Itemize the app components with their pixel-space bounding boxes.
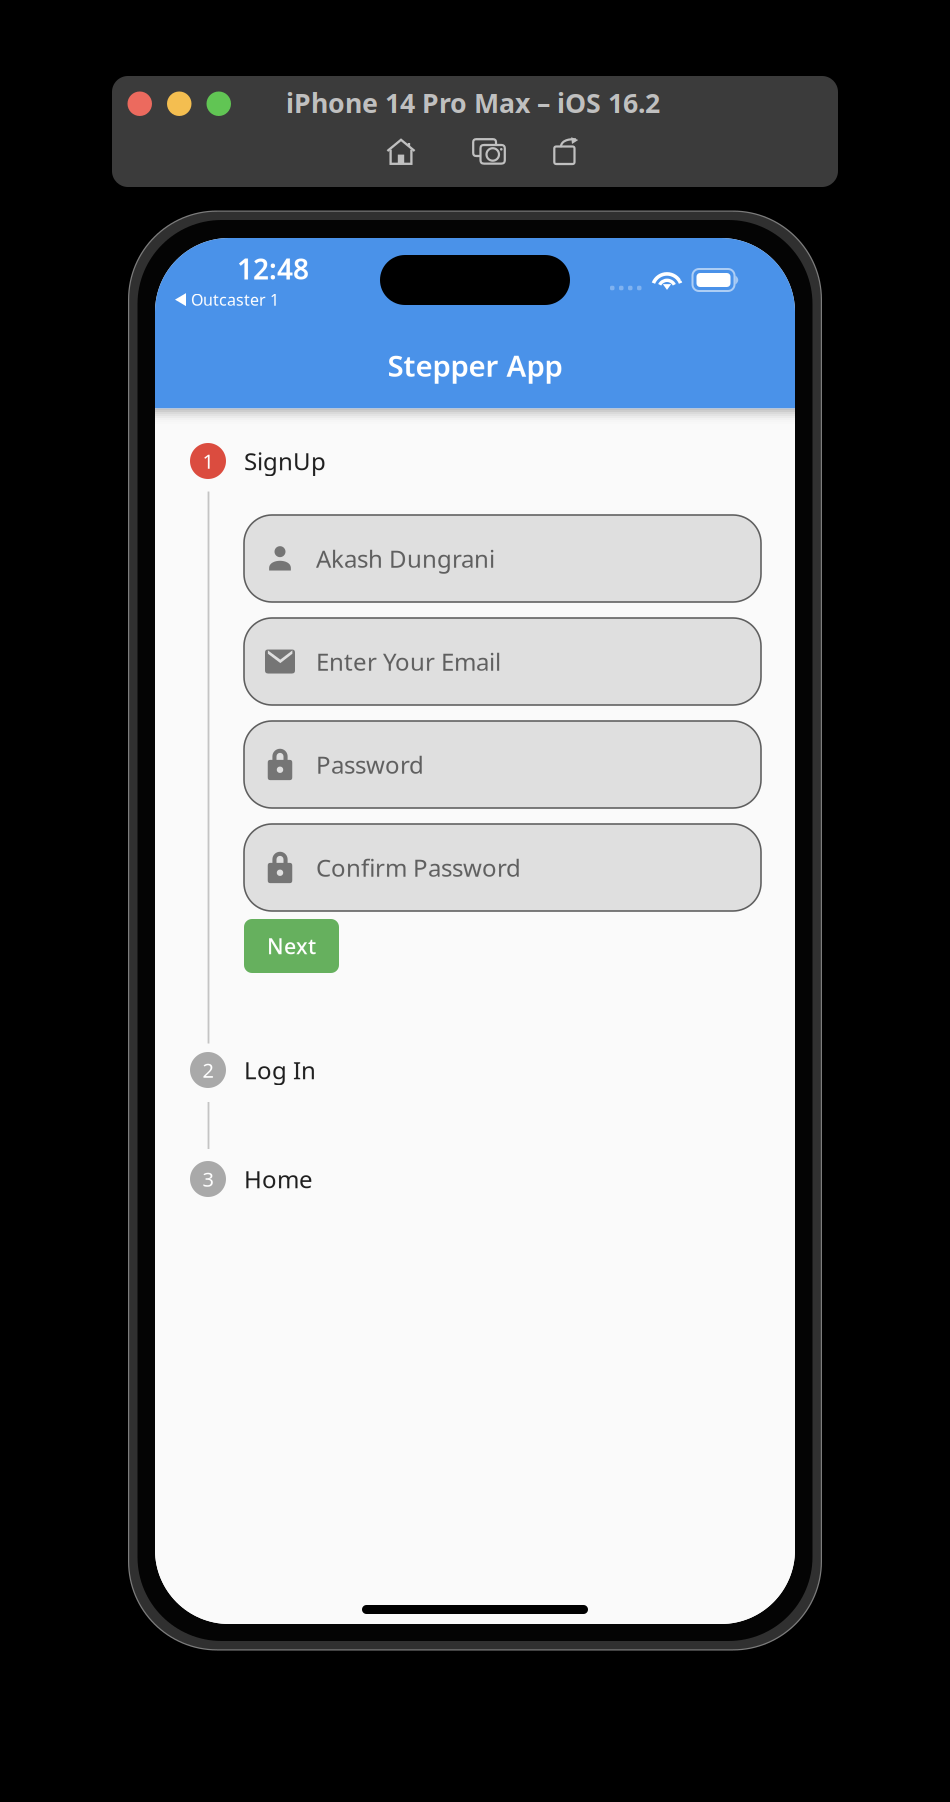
button[interactable]: Enter Your Email: [244, 618, 761, 705]
staticText: Akash Dungrani: [316, 543, 495, 574]
staticText: 3: [202, 1166, 213, 1192]
staticText: Outcaster 1: [191, 289, 279, 310]
button[interactable]: Minimize window: [167, 91, 191, 116]
button[interactable]: Next: [244, 919, 339, 973]
staticText: Next: [267, 932, 316, 960]
button[interactable]: Zoom window: [206, 91, 231, 116]
button[interactable]: Akash Dungrani: [244, 515, 761, 602]
staticText: iPhone 14 Pro Max – iOS 16.2: [286, 85, 660, 120]
button[interactable]: Password: [244, 721, 761, 808]
staticText: 1: [202, 448, 213, 474]
button[interactable]: Rotate: [553, 137, 581, 166]
staticText: SignUp: [244, 445, 326, 477]
button[interactable]: Home: [386, 138, 416, 165]
staticText: Stepper App: [387, 346, 562, 385]
staticText: Confirm Password: [316, 852, 521, 883]
button[interactable]: Confirm Password: [244, 824, 761, 911]
staticText: 2: [202, 1057, 213, 1083]
staticText: Log In: [244, 1054, 316, 1086]
button[interactable]: 2: [190, 1052, 530, 1088]
staticText: Password: [316, 749, 424, 780]
button[interactable]: Close window: [127, 91, 152, 116]
staticText: Enter Your Email: [316, 646, 501, 677]
staticText: Home: [244, 1163, 313, 1195]
button[interactable]: Screenshot: [472, 138, 506, 165]
staticText: 12:48: [237, 250, 309, 287]
button[interactable]: 3: [190, 1161, 530, 1197]
button[interactable]: 1: [190, 443, 530, 479]
